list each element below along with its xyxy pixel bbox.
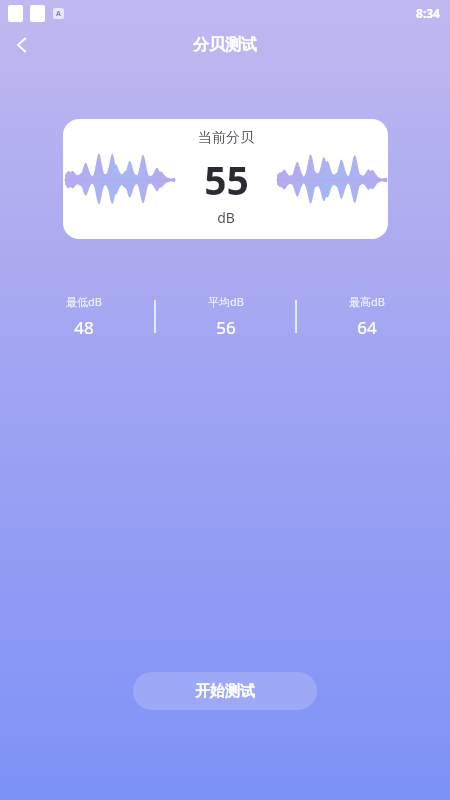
staticText: 最低dB	[66, 294, 102, 309]
staticText: 分贝测试	[193, 35, 257, 55]
staticText: 55	[204, 153, 249, 206]
staticText: 最高dB	[349, 294, 385, 309]
button[interactable]: 平均dB	[156, 294, 295, 339]
staticText: 8:34	[416, 5, 440, 21]
button[interactable]: Back	[0, 26, 44, 64]
staticText: 48	[74, 316, 94, 339]
button[interactable]: 最高dB	[297, 294, 436, 339]
staticText: 64	[357, 316, 377, 339]
button[interactable]: 最低dB	[14, 294, 154, 339]
staticText: A	[56, 9, 61, 19]
staticText: 56	[216, 316, 236, 339]
staticText: 开始测试	[195, 682, 255, 701]
staticText: 平均dB	[208, 294, 244, 309]
staticText: 当前分贝	[198, 129, 254, 147]
staticText: dB	[217, 208, 235, 227]
button[interactable]: 开始测试	[133, 672, 317, 710]
